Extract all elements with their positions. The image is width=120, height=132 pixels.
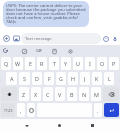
button[interactable]: Backspace <box>103 87 119 101</box>
button[interactable]: Voice input <box>110 34 119 43</box>
staticText: L <box>108 75 111 82</box>
button[interactable]: Stickers <box>49 46 59 56</box>
button[interactable]: Symbols <box>1 103 15 117</box>
button[interactable]: USPS: The carrier cannot deliver to your… <box>3 1 89 27</box>
staticText: I <box>89 60 91 67</box>
button[interactable]: Z <box>19 87 29 101</box>
staticText: USPS: The carrier cannot deliver to your… <box>6 3 86 25</box>
staticText: O <box>100 60 105 67</box>
button[interactable]: Themes <box>19 46 29 56</box>
button[interactable]: L <box>104 72 114 85</box>
button[interactable]: Home <box>55 121 64 130</box>
staticText: F <box>48 75 51 82</box>
staticText: N <box>82 91 87 98</box>
button[interactable]: X <box>31 87 41 101</box>
button[interactable]: Add attachment <box>1 33 11 43</box>
button[interactable]: P <box>109 57 119 70</box>
button[interactable]: R <box>37 57 47 70</box>
staticText: U <box>76 60 80 67</box>
button[interactable]: . <box>94 103 102 117</box>
button[interactable]: Google search <box>1 46 10 55</box>
staticText: H <box>71 75 75 82</box>
staticText: Z <box>22 91 26 98</box>
button[interactable]: Gallery <box>11 33 21 43</box>
button[interactable]: I <box>85 57 95 70</box>
button[interactable]: H <box>68 72 78 85</box>
button[interactable]: B <box>67 87 77 101</box>
button[interactable]: G <box>56 72 66 85</box>
button[interactable]: D <box>32 72 42 85</box>
button[interactable]: A <box>6 72 17 85</box>
button[interactable]: C <box>43 87 53 101</box>
staticText: M <box>94 91 99 98</box>
staticText: B <box>70 91 74 98</box>
staticText: S <box>23 75 26 82</box>
button[interactable]: Text message <box>21 33 101 44</box>
button[interactable]: Emoji <box>101 34 110 43</box>
button[interactable]: W <box>13 57 23 70</box>
button[interactable]: Enter <box>104 103 119 117</box>
button[interactable]: N <box>79 87 89 101</box>
button[interactable]: S <box>19 72 30 85</box>
button[interactable]: K <box>92 72 102 85</box>
staticText: G <box>59 75 63 82</box>
staticText: T <box>53 60 56 67</box>
staticText: P <box>112 60 116 67</box>
staticText: GIF <box>36 48 42 53</box>
button[interactable]: Y <box>61 57 71 70</box>
button[interactable]: Back <box>22 121 31 130</box>
button[interactable]: , <box>17 103 25 117</box>
button[interactable]: O <box>97 57 107 70</box>
staticText: Q <box>4 60 9 67</box>
staticText: A <box>10 75 14 82</box>
staticText: X <box>34 91 38 98</box>
button[interactable]: E <box>25 57 35 70</box>
button[interactable]: F <box>44 72 54 85</box>
button[interactable]: Recent apps <box>88 121 97 130</box>
staticText: , <box>20 107 22 114</box>
staticText: C <box>46 91 50 98</box>
button[interactable]: V <box>55 87 65 101</box>
staticText: K <box>95 75 99 82</box>
staticText: . <box>97 107 99 114</box>
button[interactable]: J <box>80 72 90 85</box>
staticText: D <box>35 75 39 82</box>
staticText: E <box>29 60 32 67</box>
staticText: V <box>58 91 62 98</box>
staticText: R <box>40 60 44 67</box>
staticText: J <box>84 75 86 82</box>
button[interactable]: Settings <box>65 46 75 56</box>
button[interactable]: U <box>73 57 83 70</box>
staticText: W <box>15 60 21 67</box>
staticText: Y <box>64 60 68 67</box>
button[interactable]: T <box>49 57 59 70</box>
button[interactable]: M <box>91 87 101 101</box>
button[interactable]: Q <box>1 57 11 70</box>
staticText: ?123 <box>4 108 13 113</box>
staticText: Text message <box>25 36 52 42</box>
button[interactable]: Emoji keyboard <box>27 103 35 117</box>
button[interactable]: GIF <box>34 46 43 55</box>
button[interactable]: Shift <box>1 87 17 101</box>
